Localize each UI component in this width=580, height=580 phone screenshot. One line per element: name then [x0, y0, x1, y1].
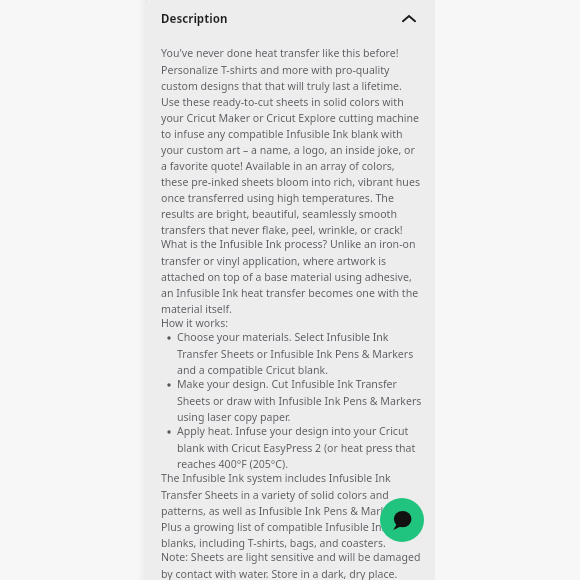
staticText: How it works: — [161, 316, 423, 330]
staticText: Description — [161, 11, 228, 27]
button[interactable]: Description — [146, 0, 435, 38]
button[interactable]: Open chat — [380, 498, 424, 542]
staticText: Choose your materials. Select Infusible … — [177, 330, 423, 377]
button[interactable]: Collapse description — [397, 7, 421, 31]
staticText: You've never done heat transfer like thi… — [161, 46, 423, 237]
staticText: What is the Infusible Ink process? Unlik… — [161, 237, 423, 316]
staticText: Note: Sheets are light sensitive and wil… — [161, 550, 423, 580]
staticText: Make your design. Cut Infusible Ink Tran… — [177, 377, 423, 424]
staticText: The Infusible Ink system includes Infusi… — [161, 471, 423, 550]
staticText: Apply heat. Infuse your design into your… — [177, 424, 423, 471]
